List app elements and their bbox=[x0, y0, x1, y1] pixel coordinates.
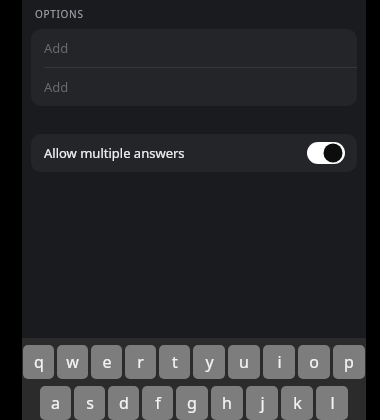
staticText: h bbox=[222, 392, 232, 414]
button[interactable]: Allow multiple answers bbox=[31, 134, 357, 172]
staticText: r bbox=[137, 351, 144, 373]
button[interactable]: u bbox=[228, 345, 260, 379]
staticText: w bbox=[66, 351, 79, 373]
staticText: g bbox=[187, 392, 197, 414]
button[interactable]: Allow multiple answers toggle, on bbox=[307, 142, 345, 164]
staticText: o bbox=[309, 351, 319, 373]
button[interactable]: y bbox=[193, 345, 225, 379]
staticText: q bbox=[34, 351, 44, 373]
button[interactable]: l bbox=[316, 386, 348, 420]
button[interactable]: Add bbox=[31, 29, 357, 67]
staticText: p bbox=[344, 351, 354, 373]
staticText: a bbox=[51, 392, 60, 414]
staticText: t bbox=[172, 351, 178, 373]
button[interactable]: t bbox=[159, 345, 190, 379]
staticText: j bbox=[260, 392, 265, 414]
staticText: OPTIONS bbox=[35, 7, 84, 21]
button[interactable]: q bbox=[23, 345, 54, 379]
staticText: Allow multiple answers bbox=[44, 144, 185, 162]
button[interactable]: h bbox=[211, 386, 243, 420]
button[interactable]: d bbox=[108, 386, 139, 420]
button[interactable]: p bbox=[333, 345, 365, 379]
button[interactable]: f bbox=[142, 386, 173, 420]
staticText: l bbox=[330, 392, 335, 414]
staticText: y bbox=[205, 351, 214, 373]
staticText: Add bbox=[44, 39, 69, 57]
button[interactable]: k bbox=[281, 386, 313, 420]
staticText: e bbox=[102, 351, 112, 373]
button[interactable]: o bbox=[298, 345, 330, 379]
button[interactable]: Add bbox=[31, 68, 357, 106]
button[interactable]: j bbox=[246, 386, 278, 420]
button[interactable]: s bbox=[74, 386, 105, 420]
button[interactable]: w bbox=[57, 345, 88, 379]
staticText: f bbox=[155, 392, 161, 414]
button[interactable]: i bbox=[263, 345, 295, 379]
staticText: k bbox=[293, 392, 302, 414]
staticText: u bbox=[239, 351, 249, 373]
button[interactable]: e bbox=[91, 345, 122, 379]
staticText: s bbox=[86, 392, 94, 414]
button[interactable]: a bbox=[40, 386, 71, 420]
button[interactable]: r bbox=[125, 345, 156, 379]
staticText: d bbox=[119, 392, 129, 414]
staticText: i bbox=[277, 351, 282, 373]
button[interactable]: g bbox=[176, 386, 208, 420]
staticText: Add bbox=[44, 78, 69, 96]
